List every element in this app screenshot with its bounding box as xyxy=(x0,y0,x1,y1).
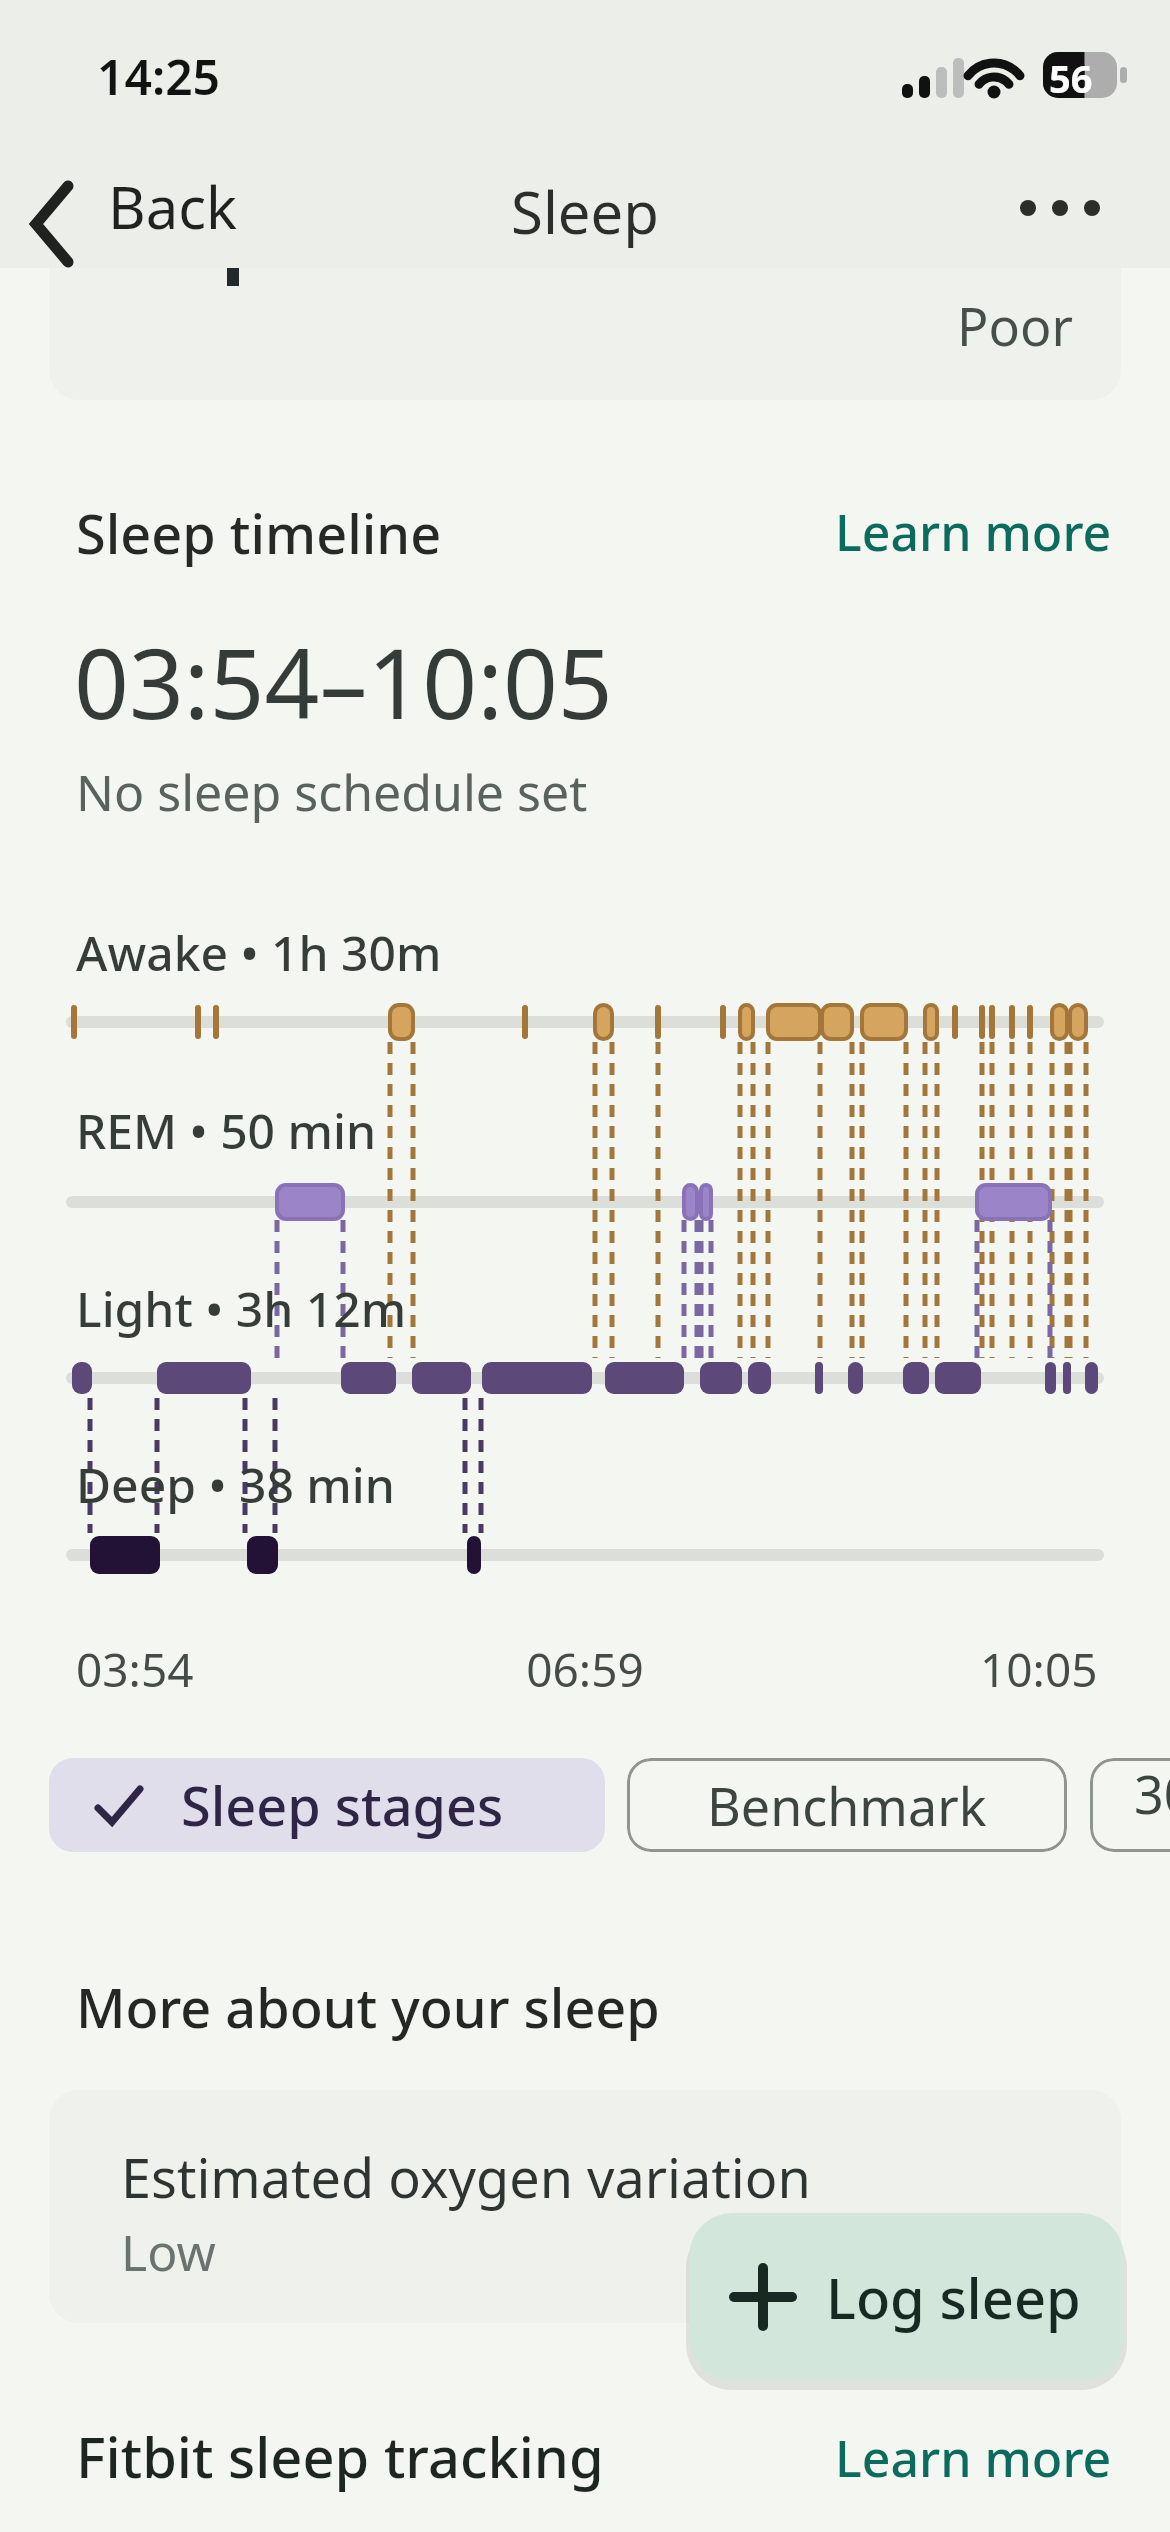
staticText: Log sleep xyxy=(826,2259,1081,2335)
staticText: 30-day avg xyxy=(1134,1758,1170,1852)
staticText: Learn more xyxy=(835,498,1112,560)
staticText: Light • 3h 12m xyxy=(76,1276,407,1341)
staticText: Low xyxy=(121,2218,216,2286)
staticText: 10:05 xyxy=(980,1638,1098,1701)
button[interactable]: Learn more xyxy=(820,498,1112,560)
staticText: Poor xyxy=(957,290,1073,361)
staticText: 56 xyxy=(1049,52,1093,104)
staticText: 03:54–10:05 xyxy=(74,616,613,747)
button[interactable]: Log sleep xyxy=(689,2213,1124,2381)
staticText: Back xyxy=(108,167,238,246)
staticText: Benchmark xyxy=(707,1770,987,1841)
staticText: REM • 50 min xyxy=(76,1098,377,1163)
staticText: 03:54 xyxy=(76,1638,194,1701)
button[interactable]: Back xyxy=(24,160,238,252)
staticText: Awake • 1h 30m xyxy=(76,920,442,985)
button[interactable]: Learn more xyxy=(820,2424,1112,2486)
staticText: Sleep stages xyxy=(181,1768,504,1842)
button[interactable]: 30-day avg xyxy=(1090,1758,1170,1852)
staticText: Sleep timeline xyxy=(76,496,442,570)
staticText: No sleep schedule set xyxy=(76,758,588,826)
staticText: 14:25 xyxy=(97,44,221,109)
staticText: Sleep xyxy=(0,172,1170,251)
staticText: 06:59 xyxy=(0,1638,1170,1701)
button[interactable] xyxy=(1000,160,1120,252)
staticText: Deep • 38 min xyxy=(76,1452,395,1517)
staticText: Estimated oxygen variation xyxy=(121,2140,811,2214)
staticText: Fitbit sleep tracking xyxy=(76,2418,604,2494)
staticText: Learn more xyxy=(835,2424,1112,2486)
button[interactable]: Sleep stages xyxy=(49,1758,605,1852)
button[interactable]: Benchmark xyxy=(627,1758,1067,1852)
button[interactable]: Estimated oxygen variation xyxy=(49,2090,1121,2323)
staticText: More about your sleep xyxy=(76,1970,660,2044)
